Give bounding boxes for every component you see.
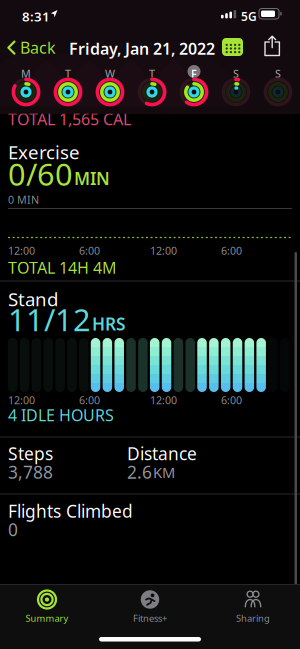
staticText: 8:31	[22, 7, 50, 25]
staticText: Sharing	[236, 612, 270, 624]
staticText: T	[149, 66, 155, 81]
staticText: Back	[20, 37, 56, 58]
button[interactable]: Back	[0, 37, 56, 58]
staticText: 12:00	[150, 243, 177, 258]
staticText: 6:00	[221, 243, 242, 258]
staticText: HRS	[92, 312, 126, 335]
staticText: Summary	[25, 612, 68, 624]
staticText: Stand	[8, 286, 58, 311]
button[interactable]: Summary	[0, 590, 94, 624]
staticText: TOTAL 1,565 CAL	[8, 108, 131, 130]
staticText: 0 MIN	[8, 192, 39, 207]
staticText: 0/60	[8, 153, 73, 194]
staticText: T	[65, 66, 71, 81]
staticText: 12:00	[8, 243, 35, 258]
staticText: Steps	[8, 442, 53, 465]
staticText: S	[233, 66, 239, 81]
staticText: 0	[8, 518, 18, 541]
staticText: KM	[153, 462, 175, 482]
staticText: Exercise	[8, 139, 80, 164]
staticText: 5G	[241, 8, 257, 24]
staticText: MIN	[74, 167, 110, 190]
staticText: TOTAL 14H 4M	[8, 257, 117, 278]
staticText: F	[191, 66, 197, 81]
staticText: M	[21, 66, 31, 81]
staticText: 11/12	[8, 299, 91, 340]
staticText: 3,788	[8, 460, 53, 483]
staticText: Flights Climbed	[8, 499, 133, 522]
staticText: 6:00	[79, 243, 100, 258]
staticText: 12:00	[150, 393, 177, 407]
button[interactable]: Share	[263, 35, 282, 57]
button[interactable]: Calendar	[222, 38, 243, 56]
staticText: 2.6	[127, 460, 152, 483]
staticText: Distance	[127, 442, 197, 465]
staticText: Fitness+	[133, 612, 167, 624]
staticText: 4 IDLE HOURS	[8, 404, 114, 426]
staticText: W	[105, 66, 115, 81]
staticText: 12:00	[8, 393, 35, 407]
staticText: 6:00	[221, 393, 242, 407]
button[interactable]: Fitness+	[94, 590, 206, 624]
staticText: S	[275, 66, 281, 81]
staticText: Friday, Jan 21, 2022	[69, 38, 215, 59]
button[interactable]: Sharing	[206, 590, 300, 624]
staticText: 6:00	[79, 393, 100, 407]
